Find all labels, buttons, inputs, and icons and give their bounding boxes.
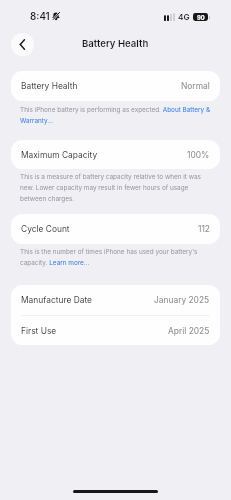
button[interactable]: Battery Health bbox=[11, 71, 220, 101]
staticText: January 2025 bbox=[154, 295, 210, 305]
staticText: 112 bbox=[198, 224, 210, 234]
staticText: Maximum Capacity bbox=[21, 150, 98, 160]
staticText: 100% bbox=[187, 150, 210, 160]
button[interactable]: Maximum Capacity bbox=[11, 140, 220, 169]
staticText: This is the number of times iPhone has u… bbox=[20, 248, 211, 267]
staticText: This iPhone battery is performing as exp… bbox=[20, 106, 211, 125]
button[interactable]: Manufacture Date bbox=[11, 285, 220, 315]
button[interactable]: Cycle Count bbox=[11, 214, 220, 244]
staticText: Battery Health bbox=[82, 38, 149, 50]
button[interactable]: First Use bbox=[11, 316, 220, 345]
staticText: Normal bbox=[181, 81, 210, 91]
staticText: 90 bbox=[197, 14, 205, 21]
staticText: First Use bbox=[21, 326, 57, 336]
staticText: Battery Health bbox=[21, 81, 78, 91]
staticText: April 2025 bbox=[168, 326, 210, 336]
staticText: 4G bbox=[178, 12, 190, 22]
staticText: Cycle Count bbox=[21, 224, 70, 234]
staticText: Manufacture Date bbox=[21, 295, 92, 305]
staticText: This is a measure of battery capacity re… bbox=[20, 173, 211, 203]
button[interactable]: Back bbox=[11, 33, 34, 56]
staticText: 8:41 bbox=[30, 11, 50, 23]
